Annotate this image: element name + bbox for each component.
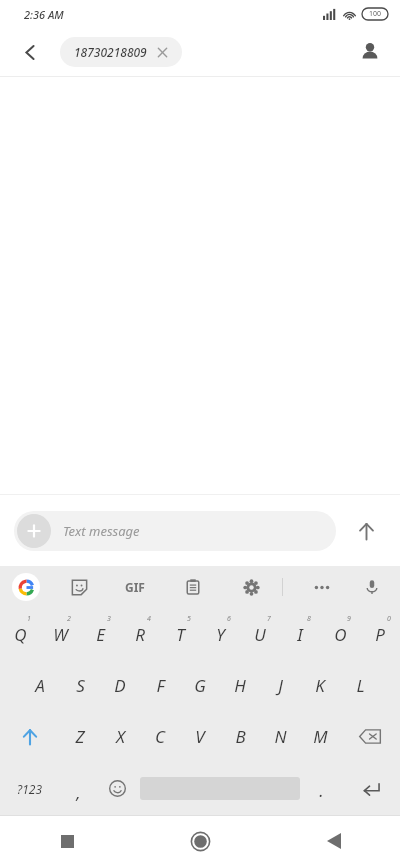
button[interactable]: W [40,608,80,660]
staticText: 18730218809 [74,44,147,60]
button[interactable]: H [220,660,260,711]
staticText: R [135,623,145,646]
button[interactable]: R [120,608,160,660]
staticText: 3 [107,614,111,624]
staticText: K [315,674,325,697]
button[interactable]: U [240,608,280,660]
button[interactable]: Attach [17,514,51,548]
button[interactable]: Enter [341,762,400,815]
button[interactable]: S [60,660,100,711]
staticText: N [274,725,287,748]
button[interactable]: D [100,660,140,711]
button[interactable]: Send [346,511,386,551]
button[interactable]: N [260,711,300,762]
staticText: Y [216,623,225,646]
button[interactable]: Z [60,711,100,762]
staticText: ?123 [17,781,42,797]
staticText: 2:36 AM [24,7,64,22]
button[interactable]: L [340,660,380,711]
staticText: 9 [347,614,351,624]
staticText: , [76,781,81,804]
staticText: . [319,779,324,802]
button[interactable]: V [180,711,220,762]
button[interactable]: Attach [14,511,336,551]
button[interactable]: GIF [116,568,154,606]
staticText: I [297,623,303,646]
staticText: D [114,674,126,697]
button[interactable]: Space [137,762,302,815]
button[interactable]: Contact details [352,34,388,70]
button[interactable]: C [140,711,180,762]
staticText: W [53,623,68,646]
button[interactable]: G [180,660,220,711]
staticText: 1 [27,614,31,624]
button[interactable]: Y [200,608,240,660]
button[interactable]: A [20,660,60,711]
button[interactable]: Q [0,608,40,660]
staticText: 6 [227,614,231,624]
staticText: E [96,623,105,646]
button[interactable]: O [320,608,360,660]
staticText: Z [75,725,85,748]
button[interactable]: T [160,608,200,660]
button[interactable]: Shift [0,711,60,762]
button[interactable]: 18730218809 [60,37,182,67]
staticText: C [155,725,165,748]
staticText: J [278,674,283,697]
staticText: O [334,623,347,646]
button[interactable]: Back [267,816,400,866]
button[interactable]: I [280,608,320,660]
staticText: 100 [369,9,382,19]
staticText: V [195,725,205,748]
staticText: B [235,725,246,748]
staticText: 7 [267,614,271,624]
button[interactable]: M [300,711,340,762]
staticText: GIF [125,579,145,595]
staticText: X [116,725,125,748]
button[interactable]: Voice input [356,571,388,603]
staticText: U [254,623,266,646]
staticText: A [35,674,45,697]
button[interactable]: K [300,660,340,711]
staticText: T [176,623,185,646]
button[interactable]: Recent apps [0,816,134,866]
button[interactable]: Emoji [98,762,137,815]
button[interactable]: Google search [12,573,40,601]
staticText: Q [14,623,27,646]
staticText: S [76,674,85,697]
staticText: 2 [67,614,71,624]
button[interactable]: J [260,660,300,711]
button[interactable]: . [302,762,341,815]
staticText: Text message [63,522,140,540]
staticText: M [313,725,328,748]
button[interactable]: Settings [236,572,266,602]
staticText: F [156,674,165,697]
staticText: P [375,623,385,646]
button[interactable]: F [140,660,180,711]
button[interactable]: Clipboard [178,572,208,602]
button[interactable]: E [80,608,120,660]
staticText: 5 [187,614,191,624]
button[interactable]: More options [306,571,338,603]
button[interactable]: B [220,711,260,762]
button[interactable]: P [360,608,400,660]
button[interactable]: , [59,762,98,815]
button[interactable]: Home [134,816,267,866]
button[interactable]: Back [12,34,48,70]
staticText: L [356,674,365,697]
staticText: 0 [387,614,391,624]
button[interactable]: Stickers [64,572,94,602]
button[interactable]: X [100,711,140,762]
staticText: 8 [307,614,311,624]
staticText: G [194,674,206,697]
staticText: H [234,674,246,697]
button[interactable]: ?123 [0,762,59,815]
staticText: 4 [147,614,151,624]
button[interactable]: Backspace [340,711,400,762]
